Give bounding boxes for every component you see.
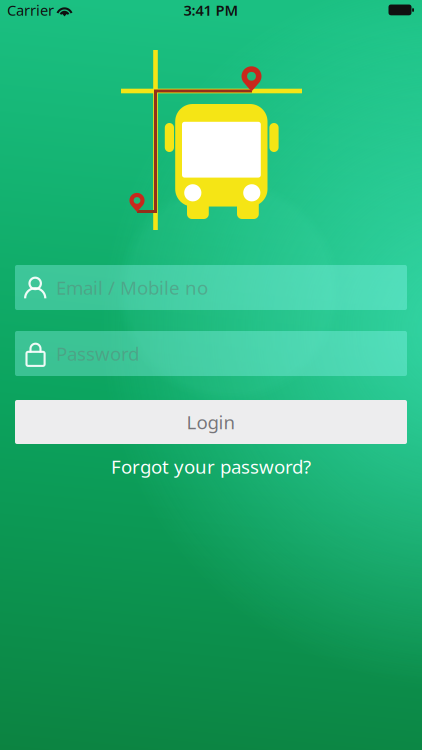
staticText: 3:41 PM	[183, 0, 238, 20]
button[interactable]: Login	[15, 400, 407, 444]
staticText: Carrier	[7, 0, 54, 20]
staticText: Login	[186, 410, 235, 434]
staticText: Forgot your password?	[111, 454, 311, 479]
button[interactable]: Forgot your password?	[99, 449, 323, 484]
staticText: Email / Mobile no	[56, 275, 208, 300]
staticText: Password	[56, 341, 139, 366]
